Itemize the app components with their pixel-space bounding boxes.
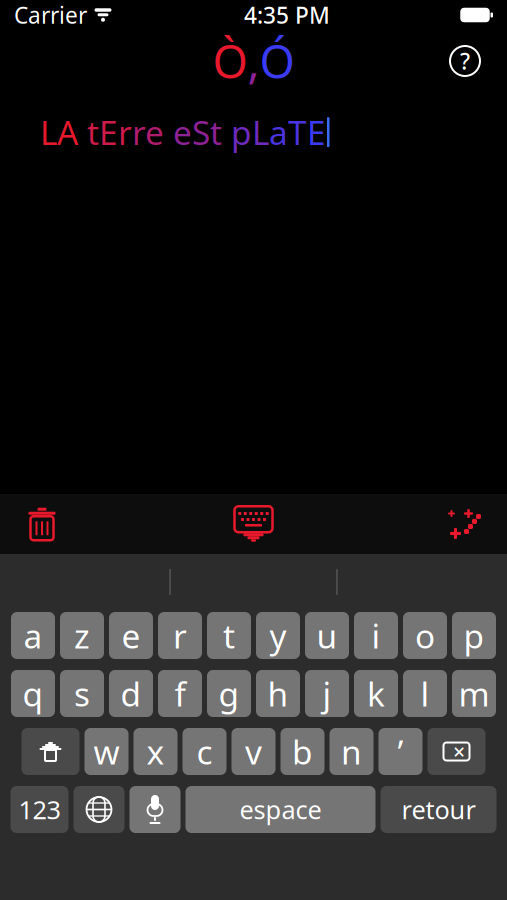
staticText: y	[269, 613, 286, 658]
button[interactable]: Effects	[435, 496, 495, 552]
staticText: x	[146, 729, 164, 774]
button[interactable]: e	[109, 612, 153, 659]
button[interactable]: q	[11, 670, 55, 717]
button[interactable]: retour	[380, 786, 496, 833]
button[interactable]: Hide keyboard	[220, 496, 286, 552]
button[interactable]: f	[158, 670, 202, 717]
staticText: n	[341, 729, 362, 774]
staticText: u	[316, 613, 337, 658]
staticText: i	[371, 613, 380, 658]
staticText: m	[458, 671, 489, 716]
button[interactable]: ’	[378, 728, 422, 775]
staticText: f	[174, 671, 185, 716]
button[interactable]: b	[280, 728, 324, 775]
staticText: re	[132, 110, 173, 154]
staticText: j	[322, 671, 331, 716]
staticText: g	[218, 671, 239, 716]
staticText: w	[93, 729, 119, 774]
staticText: espace	[239, 793, 321, 826]
staticText: Ò	[212, 31, 247, 91]
button[interactable]: Delete text	[12, 496, 72, 552]
staticText: o	[415, 613, 435, 658]
staticText: pL	[222, 110, 269, 154]
button[interactable]: t	[207, 612, 251, 659]
button[interactable]: m	[452, 670, 496, 717]
button[interactable]: Shift	[21, 728, 79, 775]
staticText: ?	[460, 46, 470, 76]
button[interactable]: g	[207, 670, 251, 717]
button[interactable]: k	[354, 670, 398, 717]
staticText: q	[22, 671, 43, 716]
button[interactable]: h	[256, 670, 300, 717]
staticText: l	[420, 671, 429, 716]
button[interactable]: c	[182, 728, 226, 775]
staticText: tEr	[87, 110, 132, 154]
staticText: e	[121, 613, 140, 658]
button[interactable]: 123	[10, 786, 68, 833]
button[interactable]: u	[305, 612, 349, 659]
staticText: retour	[401, 793, 475, 826]
staticText: r	[173, 613, 187, 658]
button[interactable]: v	[231, 728, 275, 775]
button[interactable]: s	[60, 670, 104, 717]
button[interactable]: j	[305, 670, 349, 717]
button[interactable]: d	[109, 670, 153, 717]
button[interactable]: Next keyboard	[73, 786, 124, 833]
staticText: eSt	[173, 110, 222, 154]
button[interactable]: i	[354, 612, 398, 659]
staticText: p	[463, 613, 484, 658]
staticText: aT	[269, 110, 307, 154]
staticText: Carrier	[14, 0, 87, 30]
button[interactable]: Dictation	[129, 786, 180, 833]
button[interactable]: z	[60, 612, 104, 659]
staticText: Ó	[259, 31, 294, 91]
button[interactable]: espace	[185, 786, 375, 833]
staticText: v	[245, 729, 262, 774]
button[interactable]: x	[133, 728, 177, 775]
staticText: h	[267, 671, 288, 716]
staticText: z	[74, 613, 90, 658]
staticText: 4:35 PM	[244, 0, 330, 30]
staticText: a	[23, 613, 42, 658]
button[interactable]: Delete	[427, 728, 485, 775]
button[interactable]: r	[158, 612, 202, 659]
button[interactable]: l	[403, 670, 447, 717]
staticText: k	[367, 671, 385, 716]
staticText: ,	[247, 31, 259, 91]
button[interactable]: w	[84, 728, 128, 775]
button[interactable]: y	[256, 612, 300, 659]
staticText: s	[74, 671, 90, 716]
staticText: E	[307, 110, 326, 154]
button[interactable]: n	[329, 728, 373, 775]
button[interactable]: a	[11, 612, 55, 659]
staticText: d	[120, 671, 141, 716]
staticText: b	[292, 729, 313, 774]
staticText: ×	[453, 737, 465, 766]
button[interactable]: o	[403, 612, 447, 659]
staticText: ’	[397, 729, 403, 774]
staticText: t	[223, 613, 235, 658]
button[interactable]: Help	[443, 39, 487, 83]
staticText: LA	[40, 110, 87, 154]
staticText: c	[196, 729, 212, 774]
staticText: 123	[18, 793, 60, 826]
button[interactable]: p	[452, 612, 496, 659]
